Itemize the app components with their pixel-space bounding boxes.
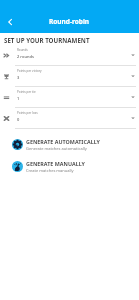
staticText: Generate matches automatically: [26, 146, 87, 151]
staticText: 3: [17, 75, 20, 80]
staticText: Points per tie: [17, 90, 36, 94]
button[interactable]: GENERATE MANUALLY: [0, 155, 139, 177]
staticText: Round-robin: [49, 17, 90, 26]
staticText: Rounds: [17, 48, 28, 52]
staticText: GENERATE MANUALLY: [26, 160, 85, 167]
staticText: 2 rounds: [17, 54, 34, 59]
button[interactable]: Points per victory: [0, 66, 139, 87]
staticText: 0: [17, 117, 20, 122]
staticText: Create matches manually: [26, 168, 74, 173]
button[interactable]: Points per tie: [0, 87, 139, 108]
staticText: GENERATE AUTOMATICALLY: [26, 138, 100, 145]
staticText: Points per loss: [17, 111, 38, 115]
button[interactable]: GENERATE AUTOMATICALLY: [0, 133, 139, 155]
button[interactable]: Back: [2, 14, 17, 29]
staticText: Points per victory: [17, 69, 42, 73]
button[interactable]: Rounds: [0, 45, 139, 66]
staticText: SET UP YOUR TOURNAMENT: [4, 36, 90, 44]
staticText: 1: [17, 96, 20, 101]
button[interactable]: Points per loss: [0, 108, 139, 129]
